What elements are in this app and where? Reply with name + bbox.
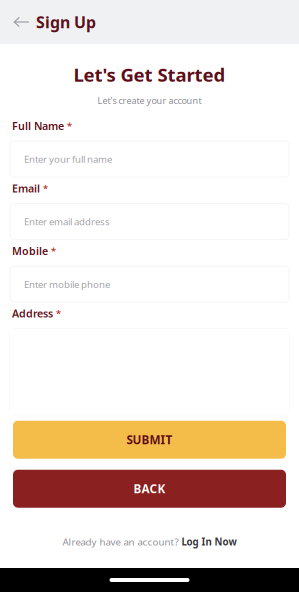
staticText: Let's Get Started — [73, 62, 225, 87]
staticText: Email — [12, 181, 40, 196]
button[interactable]: SUBMIT — [13, 421, 286, 459]
staticText: * — [51, 245, 56, 257]
staticText: Already have an account? — [62, 535, 178, 548]
staticText: Address — [12, 306, 53, 321]
staticText: Enter mobile phone — [24, 278, 110, 291]
staticText: BACK — [133, 481, 165, 497]
staticText: SUBMIT — [126, 432, 172, 448]
staticText: * — [56, 307, 61, 320]
staticText: Let's create your account — [97, 94, 201, 106]
staticText: * — [67, 119, 72, 132]
button[interactable]: BACK — [13, 470, 286, 508]
staticText: * — [43, 182, 48, 195]
staticText: Enter your full name — [24, 153, 112, 166]
button[interactable]: Back — [0, 0, 30, 44]
staticText: Full Name — [12, 119, 64, 133]
staticText: Log In Now — [181, 535, 236, 548]
staticText: Mobile — [12, 244, 48, 258]
button[interactable]: Already have an account? — [0, 526, 299, 558]
staticText: Sign Up — [36, 11, 96, 33]
staticText: Enter email address — [24, 215, 110, 228]
